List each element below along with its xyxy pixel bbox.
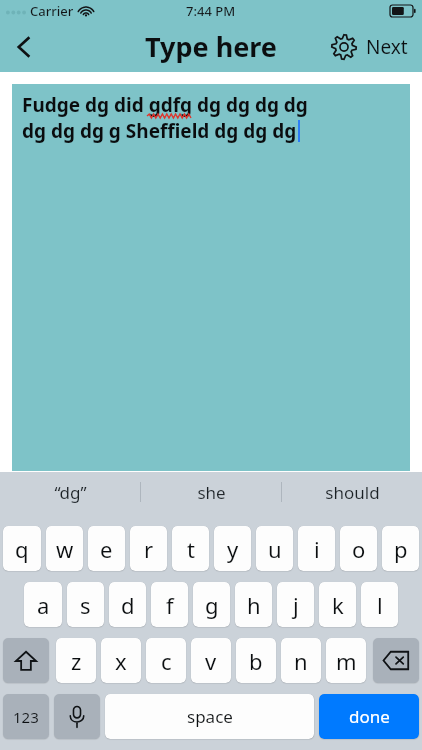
staticText: w: [56, 534, 74, 564]
button[interactable]: k: [319, 582, 356, 627]
button[interactable]: space: [105, 694, 314, 739]
staticText: k: [332, 590, 344, 620]
button[interactable]: 123: [3, 694, 49, 739]
button[interactable]: Dictation: [54, 694, 100, 739]
staticText: dg dg dg g Sheffield dg dg dg: [22, 118, 297, 144]
staticText: j: [293, 590, 299, 620]
staticText: a: [37, 590, 50, 620]
button[interactable]: b: [236, 638, 276, 683]
staticText: r: [144, 534, 154, 564]
staticText: d: [121, 590, 135, 620]
button[interactable]: w: [46, 526, 83, 571]
staticText: Type here: [145, 28, 277, 65]
staticText: Fudge dg did gdfg dg dg dg dg: [22, 92, 308, 118]
staticText: 123: [13, 707, 39, 727]
button[interactable]: n: [281, 638, 321, 683]
button[interactable]: “dg”: [0, 472, 140, 512]
button[interactable]: l: [361, 582, 398, 627]
staticText: should: [325, 481, 380, 504]
button[interactable]: a: [24, 582, 62, 627]
button[interactable]: m: [326, 638, 366, 683]
button[interactable]: Shift: [3, 638, 49, 683]
staticText: o: [352, 534, 366, 564]
staticText: f: [166, 590, 174, 620]
button[interactable]: r: [130, 526, 167, 571]
button[interactable]: she: [141, 472, 281, 512]
staticText: q: [15, 534, 29, 564]
button[interactable]: t: [172, 526, 209, 571]
staticText: s: [80, 590, 91, 620]
button[interactable]: p: [382, 526, 419, 571]
button[interactable]: h: [235, 582, 272, 627]
staticText: p: [394, 534, 408, 564]
staticText: v: [205, 646, 217, 676]
button[interactable]: g: [193, 582, 230, 627]
button[interactable]: i: [298, 526, 335, 571]
staticText: g: [205, 590, 219, 620]
button[interactable]: Next: [366, 34, 408, 60]
button[interactable]: Backspace: [373, 638, 419, 683]
staticText: “dg”: [54, 481, 87, 504]
staticText: Carrier: [30, 2, 74, 20]
button[interactable]: Back: [0, 23, 48, 71]
button[interactable]: c: [146, 638, 186, 683]
staticText: i: [314, 534, 320, 564]
staticText: n: [294, 646, 308, 676]
button[interactable]: done: [319, 694, 419, 739]
button[interactable]: y: [214, 526, 251, 571]
staticText: b: [249, 646, 263, 676]
staticText: done: [349, 705, 390, 728]
staticText: Next: [366, 34, 408, 60]
staticText: c: [161, 646, 172, 676]
staticText: x: [115, 646, 127, 676]
button[interactable]: e: [88, 526, 125, 571]
button[interactable]: o: [340, 526, 377, 571]
staticText: she: [197, 481, 226, 504]
button[interactable]: should: [282, 472, 422, 512]
staticText: 7:44 PM: [186, 2, 236, 20]
button[interactable]: f: [151, 582, 188, 627]
staticText: h: [247, 590, 261, 620]
staticText: m: [336, 646, 357, 676]
button[interactable]: s: [67, 582, 104, 627]
button[interactable]: j: [277, 582, 314, 627]
button[interactable]: Fudge dg did gdfg dg dg dg dg: [12, 84, 410, 471]
button[interactable]: u: [256, 526, 293, 571]
staticText: space: [187, 705, 233, 728]
button[interactable]: q: [3, 526, 41, 571]
staticText: e: [100, 534, 113, 564]
staticText: y: [227, 534, 239, 564]
button[interactable]: z: [56, 638, 96, 683]
staticText: u: [268, 534, 282, 564]
staticText: z: [71, 646, 82, 676]
staticText: t: [187, 534, 195, 564]
button[interactable]: Settings: [322, 25, 366, 69]
button[interactable]: v: [191, 638, 231, 683]
button[interactable]: x: [101, 638, 141, 683]
staticText: l: [377, 590, 383, 620]
button[interactable]: d: [109, 582, 146, 627]
